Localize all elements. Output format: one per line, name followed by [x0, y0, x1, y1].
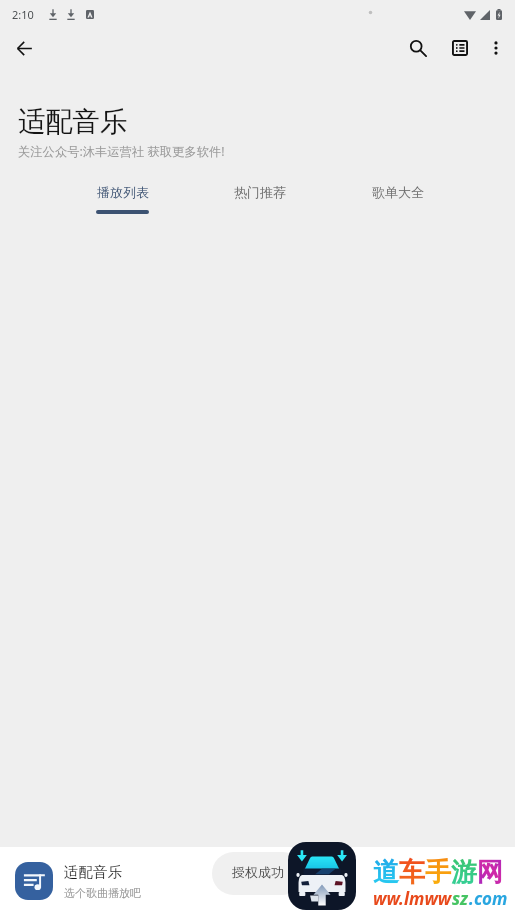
- staticText: 授权成功: [232, 864, 284, 880]
- staticText: 适配音乐: [18, 105, 128, 140]
- button[interactable]: Playlist: [442, 30, 478, 66]
- button[interactable]: Search: [400, 30, 436, 66]
- staticText: 游: [451, 856, 477, 889]
- button[interactable]: More options: [478, 30, 514, 66]
- button[interactable]: Back: [6, 30, 42, 66]
- staticText: 车: [399, 856, 425, 889]
- button[interactable]: 播放列表: [54, 178, 191, 220]
- staticText: 适配音乐: [64, 863, 122, 881]
- staticText: 热门推荐: [234, 184, 286, 200]
- button[interactable]: 歌单大全: [329, 178, 467, 220]
- staticText: 手: [425, 856, 451, 889]
- staticText: 播放列表: [97, 184, 149, 200]
- button[interactable]: 授权成功: [212, 852, 304, 895]
- staticText: sz: [452, 887, 469, 910]
- staticText: 选个歌曲播放吧: [64, 886, 141, 900]
- other: Now playing: [15, 862, 53, 900]
- staticText: 2:10: [12, 7, 34, 22]
- staticText: .com: [469, 887, 508, 910]
- staticText: 道: [373, 856, 399, 889]
- staticText: 关注公众号:沐丰运营社 获取更多软件!: [18, 143, 225, 160]
- button[interactable]: 热门推荐: [191, 178, 329, 220]
- staticText: ww.lmww: [373, 887, 452, 910]
- button[interactable]: Now playing: [0, 847, 165, 915]
- staticText: 歌单大全: [372, 184, 424, 200]
- staticText: 网: [477, 856, 503, 889]
